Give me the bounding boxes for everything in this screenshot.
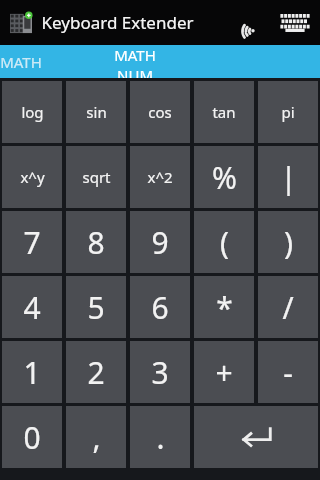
staticText: pi [281,102,295,122]
staticText: 2 [87,352,105,393]
button[interactable]: ( [194,211,254,273]
button[interactable]: / [258,276,318,338]
staticText: 6 [151,287,169,328]
button[interactable]: 0 [2,406,62,468]
button[interactable]: % [194,146,254,208]
staticText: MATHNUM [110,45,160,78]
staticText: x^2 [147,167,173,187]
button[interactable]: * [194,276,254,338]
button[interactable]: | [258,146,318,208]
staticText: , [92,417,101,458]
button[interactable]: MATH [0,45,118,78]
staticText: 3 [151,352,169,393]
staticText: Keyboard Extender [41,11,194,34]
staticText: % [212,157,237,198]
staticText: log [21,102,44,122]
staticText: x^y [20,167,45,187]
staticText: MATH [0,52,42,72]
button[interactable]: 7 [2,211,62,273]
button[interactable]: - [258,341,318,403]
button[interactable]: 5 [66,276,126,338]
staticText: + [215,352,233,393]
staticText: ( [220,222,229,263]
staticText: 7 [23,222,41,263]
staticText: 9 [151,222,169,263]
button[interactable]: , [66,406,126,468]
button[interactable]: MATHNUM [110,45,160,78]
staticText: cos [148,102,172,122]
button[interactable]: sin [66,81,126,143]
button[interactable]: 6 [130,276,190,338]
button[interactable]: log [2,81,62,143]
button[interactable]: pi [258,81,318,143]
staticText: sin [86,102,107,122]
button[interactable]: 4 [2,276,62,338]
staticText: * [216,287,233,328]
button[interactable]: Wi-Fi status [236,6,270,40]
button[interactable]: + [194,341,254,403]
staticText: 8 [87,222,105,263]
staticText: 0 [23,417,41,458]
button[interactable]: x^2 [130,146,190,208]
button[interactable]: 1 [2,341,62,403]
staticText: ) [284,222,293,263]
staticText: . [156,417,165,458]
button[interactable]: ) [258,211,318,273]
button[interactable]: 9 [130,211,190,273]
button[interactable]: 2 [66,341,126,403]
staticText: 5 [87,287,105,328]
staticText: - [283,352,293,393]
button[interactable]: 3 [130,341,190,403]
staticText: 1 [23,352,41,393]
button[interactable]: . [130,406,190,468]
button[interactable]: Enter [194,406,318,468]
button[interactable]: 8 [66,211,126,273]
staticText: / [282,287,294,328]
button[interactable]: Keyboard settings [276,4,314,42]
button[interactable]: sqrt [66,146,126,208]
staticText: tan [212,102,236,122]
button[interactable]: cos [130,81,190,143]
staticText: 4 [23,287,41,328]
button[interactable]: tan [194,81,254,143]
button[interactable]: x^y [2,146,62,208]
staticText: | [280,157,297,198]
staticText: sqrt [82,167,111,187]
